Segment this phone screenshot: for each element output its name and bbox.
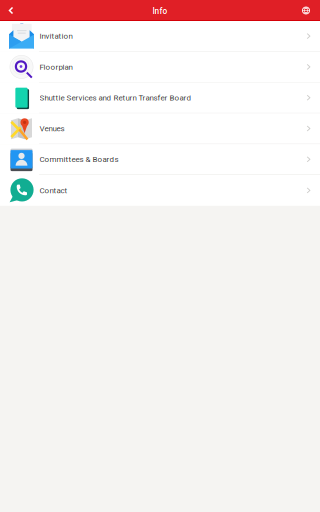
- staticText: Floorplan: [39, 62, 72, 72]
- staticText: Shuttle Services and Return Transfer Boa…: [39, 93, 191, 102]
- button[interactable]: Invitation: [0, 21, 320, 52]
- button[interactable]: Committees & Boards: [0, 144, 320, 175]
- button[interactable]: Contact: [0, 175, 320, 206]
- button[interactable]: Floorplan: [0, 52, 320, 83]
- staticText: Info: [152, 6, 167, 16]
- button[interactable]: Back: [0, 0, 21, 21]
- staticText: Invitation: [39, 31, 72, 41]
- staticText: Contact: [39, 186, 67, 195]
- button[interactable]: Language: [294, 0, 317, 21]
- button[interactable]: Venues: [0, 113, 320, 144]
- staticText: Committees & Boards: [39, 155, 118, 164]
- staticText: Venues: [39, 124, 64, 133]
- button[interactable]: Shuttle Services and Return Transfer Boa…: [0, 83, 320, 113]
